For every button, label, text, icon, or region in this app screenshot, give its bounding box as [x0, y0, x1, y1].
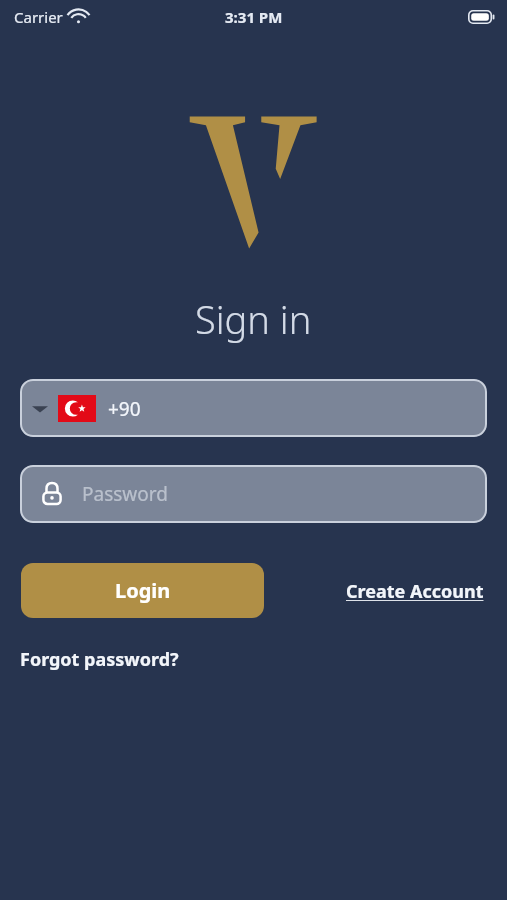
button[interactable]: Forgot password? — [20, 647, 179, 672]
staticText: +90 — [108, 396, 141, 422]
staticText: Login — [115, 577, 171, 604]
staticText: Forgot password? — [20, 647, 179, 672]
staticText: Carrier — [14, 7, 63, 27]
staticText: Password — [82, 481, 168, 507]
staticText: Create Account — [346, 579, 484, 604]
button[interactable]: Create Account — [336, 572, 494, 610]
button[interactable]: Password — [20, 465, 487, 523]
button[interactable]: Login — [21, 563, 264, 618]
staticText: 3:31 PM — [225, 7, 283, 27]
button[interactable]: Select country code — [20, 379, 487, 437]
other: Select country code — [32, 403, 48, 415]
staticText: Sign in — [195, 293, 312, 345]
